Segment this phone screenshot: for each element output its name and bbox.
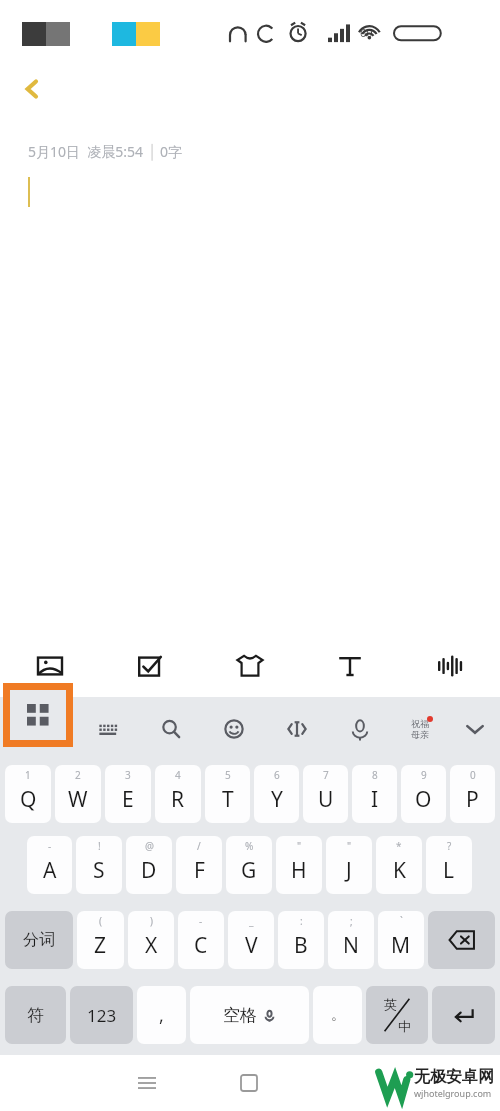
button[interactable]: : (278, 911, 324, 969)
staticText: 祝福 (411, 718, 429, 729)
staticText: P (466, 785, 479, 814)
button[interactable]: Keyboard (76, 697, 139, 761)
button[interactable]: - (27, 836, 72, 894)
button[interactable]: Back (0, 62, 64, 116)
staticText: 1 (25, 768, 31, 782)
staticText: 中 (398, 1018, 411, 1034)
button[interactable]: Enter (432, 986, 495, 1044)
button[interactable]: ( (77, 911, 124, 969)
staticText: D (141, 856, 157, 885)
staticText: A (43, 856, 57, 885)
button[interactable]: 分词 (5, 911, 73, 969)
staticText: 母亲 (411, 729, 429, 740)
button[interactable]: / (176, 836, 222, 894)
button[interactable]: 2 (55, 765, 101, 823)
button[interactable]: Text format (300, 635, 400, 697)
staticText: I (371, 785, 379, 814)
button[interactable]: ) (128, 911, 174, 969)
button[interactable]: , (137, 986, 186, 1044)
button[interactable]: * (376, 836, 422, 894)
staticText: % (245, 839, 254, 853)
button[interactable]: ! (76, 836, 122, 894)
staticText: wjhotelgroup.com (414, 1087, 492, 1099)
staticText: U (318, 785, 334, 814)
staticText: Q (20, 785, 37, 814)
staticText: 5 (225, 768, 231, 782)
staticText: 0字 (160, 142, 183, 161)
button[interactable]: - (178, 911, 224, 969)
staticText: T (222, 785, 234, 814)
button[interactable]: 1 (5, 765, 51, 823)
staticText: 9 (421, 768, 427, 782)
button[interactable]: Voice input (328, 697, 391, 761)
staticText: R (171, 785, 185, 814)
button[interactable]: Panel selected (3, 683, 73, 747)
staticText: ? (447, 839, 452, 853)
staticText: G (241, 856, 257, 885)
staticText: 6 (274, 768, 280, 782)
staticText: " (347, 839, 352, 853)
button[interactable]: Sticker (200, 635, 300, 697)
button[interactable]: Hide keyboard (449, 697, 500, 761)
button[interactable]: Panel (0, 697, 76, 761)
button[interactable]: 0 (450, 765, 495, 823)
button[interactable]: Recents (117, 1055, 177, 1111)
staticText: 7 (323, 768, 329, 782)
staticText: H (291, 856, 307, 885)
button[interactable]: ? (426, 836, 472, 894)
staticText: ! (98, 839, 101, 853)
button[interactable]: 6 (254, 765, 299, 823)
button[interactable]: ` (378, 911, 424, 969)
staticText: 3 (125, 768, 131, 782)
button[interactable]: 。 (313, 986, 362, 1044)
button[interactable]: Search (139, 697, 202, 761)
staticText: @ (145, 839, 154, 853)
button[interactable]: _ (228, 911, 274, 969)
staticText: 符 (27, 1005, 44, 1026)
staticText: ; (350, 914, 353, 928)
button[interactable]: Home (219, 1055, 279, 1111)
staticText: K (393, 856, 406, 885)
staticText: Z (94, 931, 107, 960)
staticText: 4 (175, 768, 181, 782)
staticText: F (194, 856, 205, 885)
button[interactable]: Switch language (366, 986, 428, 1044)
button[interactable]: 7 (303, 765, 348, 823)
button[interactable]: Delete (428, 911, 495, 969)
staticText: B (294, 931, 308, 960)
staticText: 无极安卓网 (414, 1067, 494, 1087)
button[interactable]: 5 (205, 765, 250, 823)
button[interactable]: Themes (391, 697, 449, 761)
staticText: S (93, 856, 105, 885)
button[interactable]: Voice (400, 635, 500, 697)
staticText: ` (400, 914, 403, 928)
button[interactable]: " (276, 836, 322, 894)
button[interactable]: @ (126, 836, 172, 894)
button[interactable]: 9 (401, 765, 446, 823)
staticText: Y (271, 785, 283, 814)
button[interactable]: 123 (70, 986, 133, 1044)
button[interactable]: Image (0, 635, 100, 697)
button[interactable]: 空格 (190, 986, 309, 1044)
button[interactable]: % (226, 836, 272, 894)
staticText: W (68, 785, 88, 814)
staticText: 分词 (23, 930, 55, 950)
button[interactable]: 3 (105, 765, 151, 823)
button[interactable]: Checklist (100, 635, 200, 697)
staticText: 英 (384, 996, 397, 1012)
staticText: J (346, 856, 352, 885)
button[interactable]: 符 (5, 986, 66, 1044)
staticText: 5月10日 凌晨5:54 (28, 142, 144, 161)
button[interactable]: ; (328, 911, 374, 969)
button[interactable]: 4 (155, 765, 201, 823)
button[interactable]: 8 (352, 765, 397, 823)
staticText: ) (150, 914, 153, 928)
button[interactable]: Emoji (202, 697, 265, 761)
staticText: - (199, 914, 203, 928)
staticText: - (48, 839, 52, 853)
button[interactable]: " (326, 836, 372, 894)
button[interactable]: Cursor (265, 697, 328, 761)
staticText: : (300, 914, 303, 928)
staticText: X (145, 931, 158, 960)
staticText: 60 (360, 25, 373, 40)
